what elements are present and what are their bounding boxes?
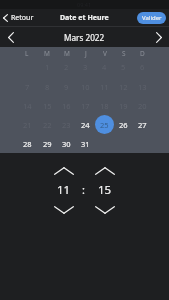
button[interactable]: Augmenter [52,164,76,178]
staticText: 4 [102,62,107,72]
staticText: J [85,49,87,58]
button[interactable]: 29 [38,134,57,153]
button[interactable]: 30 [57,134,76,153]
staticText: 2 [64,62,69,72]
staticText: 3 [83,62,88,72]
staticText: M [44,49,50,58]
button[interactable]: Augmenter [93,164,117,178]
button[interactable]: 25 [95,115,114,134]
button[interactable]: 26 [114,115,133,134]
button[interactable]: 27 [133,115,152,134]
staticText: 12 [119,82,128,92]
staticText: 15 [98,182,112,198]
staticText: Mars 2022 [64,32,105,43]
staticText: 11 [100,82,109,92]
staticText: 30 [62,139,71,149]
button[interactable]: Retour [0,10,38,26]
button[interactable]: Mois precedent [4,29,17,46]
staticText: 17 [81,101,90,111]
button[interactable]: Diminuer [93,203,117,217]
staticText: 27 [138,120,147,130]
staticText: L [25,49,29,58]
button[interactable]: 24 [76,115,95,134]
staticText: 6 [140,62,145,72]
button[interactable]: Diminuer [52,203,76,217]
staticText: 16 [62,101,71,111]
staticText: 5 [121,62,126,72]
staticText: Retour [11,13,34,23]
staticText: 28 [23,139,32,149]
button[interactable]: Valider [137,12,166,24]
staticText: 26 [119,120,128,130]
staticText: 10 [81,82,90,92]
staticText: 11 [57,182,71,198]
staticText: V [103,49,107,58]
staticText: S [122,49,126,58]
staticText: 9 [64,82,69,92]
staticText: 22 [43,120,52,130]
staticText: 15 [43,101,52,111]
staticText: 31 [81,139,90,149]
staticText: Valider [142,14,162,22]
staticText: 21 [23,120,32,130]
staticText: 8 [45,82,50,92]
staticText: 18 [100,101,109,111]
staticText: D [140,49,145,58]
staticText: 24 [81,120,90,130]
staticText: 25 [100,120,109,130]
staticText: : [82,182,85,197]
staticText: 29 [43,139,52,149]
staticText: 19 [119,101,128,111]
staticText: M [64,49,70,58]
staticText: 14 [23,101,32,111]
button[interactable]: 28 [18,134,37,153]
staticText: 13 [138,82,147,92]
button[interactable]: Mois suivant [152,29,165,46]
staticText: 23 [62,120,71,130]
staticText: 7 [25,82,30,92]
button[interactable]: 31 [76,134,95,153]
staticText: 20 [138,101,147,111]
staticText: Date et Heure [60,13,109,23]
